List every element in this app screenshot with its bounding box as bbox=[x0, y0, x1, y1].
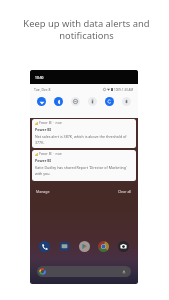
button[interactable]: Auto rotate bbox=[105, 97, 114, 106]
button[interactable]: Bluetooth bbox=[54, 97, 63, 106]
button[interactable]: Phone bbox=[39, 241, 50, 252]
staticText: Katie Dudley has shared Report 'Director… bbox=[35, 165, 133, 177]
staticText: Tue, Dec 8 bbox=[34, 87, 51, 92]
staticText: Keep up with data alerts and notificatio… bbox=[13, 17, 160, 42]
button[interactable]: Chrome bbox=[98, 241, 109, 252]
staticText: Power BI · now bbox=[39, 121, 62, 125]
button[interactable]: Search bbox=[37, 266, 131, 277]
button[interactable]: Do not disturb bbox=[71, 97, 80, 106]
button[interactable]: Play Store bbox=[79, 241, 90, 252]
button[interactable]: Wi‑Fi bbox=[37, 97, 46, 106]
staticText: 10:50 bbox=[35, 75, 44, 79]
staticText: Clear all bbox=[118, 189, 132, 194]
button[interactable]: Power BI · now bbox=[32, 119, 136, 148]
staticText: Manage bbox=[36, 189, 50, 194]
button[interactable]: Battery saver bbox=[122, 97, 131, 106]
button[interactable]: Messages bbox=[59, 241, 70, 252]
staticText: 100% 1:30 AM bbox=[114, 88, 134, 92]
staticText: Power BI bbox=[35, 127, 51, 132]
staticText: Net sales alert is 387K, which is above … bbox=[35, 134, 133, 146]
staticText: Power BI bbox=[35, 158, 51, 163]
button[interactable]: Clear all bbox=[117, 188, 133, 195]
button[interactable]: Power BI · now bbox=[32, 150, 136, 181]
button[interactable]: Flashlight bbox=[88, 97, 97, 106]
staticText: Power BI · now bbox=[39, 152, 62, 156]
button[interactable]: Manage bbox=[35, 188, 51, 195]
button[interactable]: Camera bbox=[118, 241, 129, 252]
